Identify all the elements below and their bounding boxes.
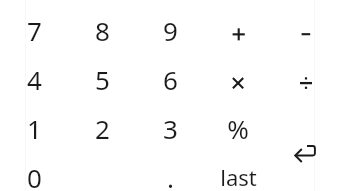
- staticText: 7: [27, 13, 42, 48]
- button[interactable]: Plus: [204, 6, 272, 55]
- button[interactable]: 7: [0, 6, 68, 55]
- staticText: 6: [163, 62, 178, 97]
- staticText: last: [220, 162, 257, 191]
- button[interactable]: 1: [0, 104, 68, 153]
- button[interactable]: 9: [136, 6, 204, 55]
- button[interactable]: 4: [0, 55, 68, 104]
- button[interactable]: 3: [136, 104, 204, 153]
- staticText: 3: [163, 111, 178, 146]
- staticText: 9: [163, 13, 178, 48]
- staticText: 0: [27, 160, 42, 191]
- button[interactable]: Enter: [272, 104, 340, 191]
- staticText: 8: [95, 13, 110, 48]
- button[interactable]: %: [204, 104, 272, 153]
- staticText: 2: [95, 111, 110, 146]
- staticText: 1: [27, 111, 42, 146]
- button[interactable]: 0: [0, 153, 68, 191]
- button[interactable]: 6: [136, 55, 204, 104]
- button[interactable]: Divide: [272, 55, 340, 104]
- button[interactable]: Minus: [272, 6, 340, 55]
- staticText: 5: [95, 62, 110, 97]
- button[interactable]: 2: [68, 104, 136, 153]
- staticText: %: [227, 111, 249, 146]
- staticText: 4: [27, 62, 42, 97]
- button[interactable]: 8: [68, 6, 136, 55]
- button[interactable]: Multiply: [204, 55, 272, 104]
- staticText: .: [167, 160, 174, 191]
- button[interactable]: 5: [68, 55, 136, 104]
- button[interactable]: last: [204, 153, 272, 191]
- button[interactable]: .: [136, 153, 204, 191]
